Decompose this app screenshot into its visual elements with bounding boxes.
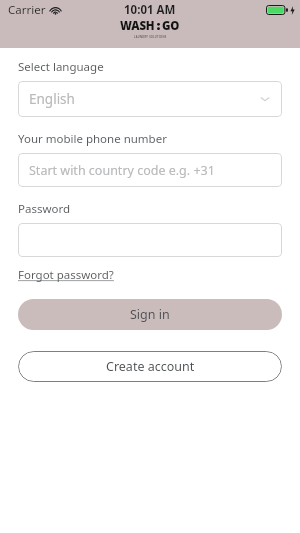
button[interactable] [18, 223, 282, 257]
button[interactable]: Start with country code e.g. +31 [18, 153, 282, 187]
staticText: WASH [120, 18, 155, 34]
staticText: Forgot password? [18, 267, 114, 283]
staticText: Sign in [130, 306, 170, 323]
other: Wi-Fi [50, 6, 61, 15]
staticText: Select language [18, 59, 104, 75]
staticText: 10:01 AM [124, 2, 176, 18]
staticText: Carrier [8, 2, 46, 18]
other: Charging [290, 6, 295, 15]
button[interactable]: Forgot password? [18, 267, 114, 283]
button[interactable]: Create account [18, 351, 282, 382]
button[interactable]: Sign in [18, 299, 282, 330]
staticText: Start with country code e.g. +31 [29, 162, 215, 179]
other: Battery [266, 5, 288, 15]
staticText: Password [18, 201, 71, 217]
staticText: Create account [106, 358, 195, 375]
button[interactable]: English [18, 81, 282, 117]
staticText: GO [162, 18, 180, 34]
staticText: Your mobile phone number [18, 131, 167, 147]
staticText: English [29, 90, 75, 108]
staticText: LAUNDRY SOLUTIONS [134, 35, 167, 39]
